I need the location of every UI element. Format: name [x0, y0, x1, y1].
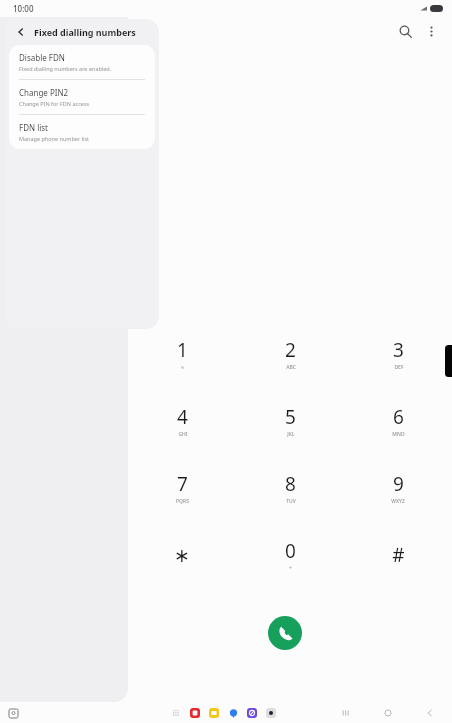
staticText: Disable FDN	[19, 52, 65, 63]
button[interactable]: 0	[236, 521, 344, 588]
staticText: JKL	[287, 431, 295, 438]
button[interactable]: Messages	[226, 706, 240, 720]
staticText: 7	[177, 471, 188, 497]
staticText: 9	[393, 471, 404, 497]
button[interactable]: Apps	[169, 706, 183, 720]
button[interactable]: App	[207, 706, 221, 720]
button[interactable]: 2	[236, 320, 344, 387]
button[interactable]: Recents	[338, 705, 354, 721]
staticText: 0	[285, 538, 296, 564]
staticText: ∞	[180, 364, 185, 370]
staticText: +	[289, 565, 292, 572]
staticText: MNO	[392, 431, 405, 438]
button[interactable]: App	[264, 706, 278, 720]
staticText: ABC	[286, 364, 296, 371]
staticText: 8	[285, 471, 296, 497]
button[interactable]: 1	[128, 320, 236, 387]
staticText: 4	[177, 404, 188, 430]
button[interactable]: Home	[380, 705, 396, 721]
button[interactable]: Change PIN2	[9, 80, 155, 114]
staticText: 10:00	[13, 3, 34, 14]
staticText: 1	[177, 337, 188, 363]
button[interactable]: Back	[422, 705, 438, 721]
button[interactable]: 9	[344, 454, 452, 521]
staticText: 5	[285, 404, 296, 430]
button[interactable]: #	[344, 521, 452, 588]
button[interactable]: 8	[236, 454, 344, 521]
button[interactable]: Search	[392, 18, 418, 44]
button[interactable]: 5	[236, 387, 344, 454]
button[interactable]: 4	[128, 387, 236, 454]
staticText: DEF	[394, 364, 404, 371]
staticText: PQRS	[176, 498, 189, 505]
button[interactable]: More options	[418, 18, 444, 44]
staticText: #	[392, 542, 405, 568]
staticText: WXYZ	[391, 498, 405, 505]
staticText: Manage phone number list	[19, 135, 90, 142]
staticText: GHI	[178, 431, 188, 438]
button[interactable]: Disable FDN	[9, 45, 155, 79]
button[interactable]: 6	[344, 387, 452, 454]
button[interactable]: Edge panel handle	[445, 345, 452, 377]
button[interactable]: 7	[128, 454, 236, 521]
staticText: FDN list	[19, 122, 48, 133]
button[interactable]: Call	[268, 616, 302, 650]
button[interactable]: 3	[344, 320, 452, 387]
button[interactable]: Back	[14, 25, 28, 39]
staticText: Fixed dialling numbers are enabled.	[19, 65, 112, 72]
staticText: 2	[285, 337, 296, 363]
button[interactable]: Screenshot	[5, 705, 21, 721]
button[interactable]: ∗	[128, 521, 236, 588]
staticText: ∗	[174, 544, 190, 566]
staticText: Change PIN for FDN access	[19, 100, 90, 107]
staticText: 6	[393, 404, 404, 430]
staticText: Fixed dialling numbers	[34, 26, 136, 38]
button[interactable]: FDN list	[9, 115, 155, 149]
staticText: 3	[393, 337, 404, 363]
button[interactable]: App	[245, 706, 259, 720]
staticText: TUV	[286, 498, 296, 505]
button[interactable]: App	[188, 706, 202, 720]
staticText: Change PIN2	[19, 87, 69, 98]
